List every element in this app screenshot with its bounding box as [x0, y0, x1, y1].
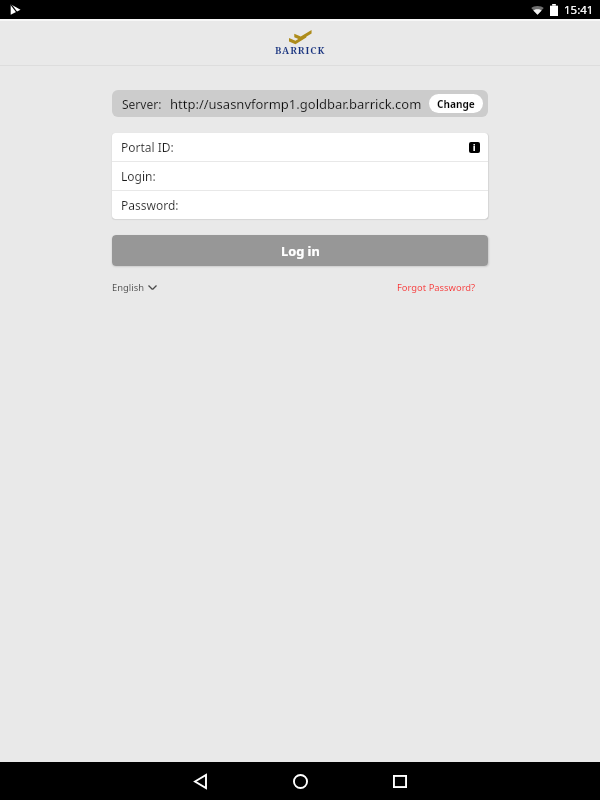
- staticText: Server:: [122, 96, 162, 112]
- staticText: Forgot Password?: [397, 281, 476, 294]
- button[interactable]: Password:: [112, 191, 488, 219]
- staticText: English: [112, 281, 144, 294]
- button[interactable]: Forgot Password?: [397, 279, 476, 296]
- button[interactable]: Login:: [112, 162, 488, 190]
- button[interactable]: Change: [429, 94, 483, 113]
- staticText: BARRICK: [275, 44, 326, 57]
- staticText: Portal ID:: [121, 139, 174, 155]
- staticText: i: [473, 142, 476, 153]
- button[interactable]: Portal ID:: [112, 133, 488, 161]
- button[interactable]: Information: [469, 142, 480, 153]
- staticText: 15:41: [564, 2, 594, 18]
- staticText: http://usasnvformp1.goldbar.barrick.com: [170, 95, 422, 113]
- staticText: Password:: [121, 197, 179, 213]
- staticText: Login:: [121, 168, 156, 184]
- button[interactable]: Home: [250, 762, 350, 800]
- staticText: Change: [437, 97, 475, 111]
- button[interactable]: Back: [150, 762, 250, 800]
- button[interactable]: Log in: [112, 235, 488, 266]
- button[interactable]: English: [112, 279, 157, 296]
- button[interactable]: Recent apps: [350, 762, 450, 800]
- button[interactable]: Server:: [112, 90, 488, 117]
- staticText: Log in: [281, 242, 320, 259]
